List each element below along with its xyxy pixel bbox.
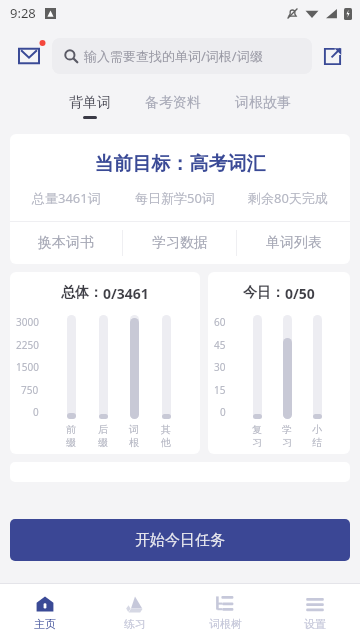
staticText: 学 <box>282 423 292 436</box>
staticText: 剩余80天完成 <box>248 189 328 207</box>
staticText: 今日： <box>243 284 285 302</box>
button[interactable]: Messages <box>12 39 46 73</box>
staticText: 小 <box>312 423 322 436</box>
staticText: 后 <box>98 423 108 436</box>
staticText: 15 <box>214 383 226 397</box>
staticText: 输入需要查找的单词/词根/词缀 <box>84 47 263 65</box>
staticText: 他 <box>161 436 171 449</box>
staticText: 主页 <box>34 617 56 631</box>
staticText: 1500 <box>16 360 39 374</box>
button[interactable]: 换本词书 <box>10 222 122 264</box>
staticText: 0 <box>33 405 39 419</box>
staticText: 结 <box>312 436 322 449</box>
staticText: 习 <box>252 436 262 449</box>
button[interactable]: 主页 <box>0 594 90 631</box>
button[interactable]: 练习 <box>90 594 180 631</box>
staticText: 词根故事 <box>235 94 291 112</box>
staticText: 前 <box>66 423 76 436</box>
staticText: 词根树 <box>209 617 242 631</box>
staticText: 缀 <box>66 436 76 449</box>
staticText: 9:28 <box>10 4 36 22</box>
button[interactable]: 设置 <box>270 594 360 631</box>
staticText: 背单词 <box>69 94 111 112</box>
button[interactable]: 备考资料 <box>143 94 203 116</box>
button[interactable]: 词根故事 <box>233 94 293 116</box>
staticText: 2250 <box>16 338 39 352</box>
staticText: 总量3461词 <box>32 189 101 207</box>
staticText: 缀 <box>98 436 108 449</box>
button[interactable]: 背单词 <box>67 94 113 119</box>
staticText: 单词列表 <box>266 234 322 252</box>
button[interactable]: 词根树 <box>180 594 270 631</box>
staticText: 设置 <box>304 617 326 631</box>
staticText: 750 <box>21 383 39 397</box>
staticText: 词 <box>129 423 139 436</box>
staticText: 当前目标：高考词汇 <box>10 152 350 176</box>
button[interactable]: 学习数据 <box>123 222 236 264</box>
staticText: 习 <box>282 436 292 449</box>
staticText: 总体： <box>61 284 103 302</box>
staticText: 3000 <box>16 315 39 329</box>
staticText: 其 <box>161 423 171 436</box>
staticText: 练习 <box>124 617 146 631</box>
staticText: 开始今日任务 <box>135 531 225 550</box>
staticText: 0/50 <box>285 284 315 303</box>
staticText: 0/3461 <box>103 284 149 303</box>
button[interactable]: 开始今日任务 <box>10 519 350 561</box>
button[interactable]: Open external <box>316 40 348 72</box>
staticText: 复 <box>252 423 262 436</box>
staticText: 60 <box>214 315 226 329</box>
staticText: 换本词书 <box>38 234 94 252</box>
staticText: 根 <box>129 436 139 449</box>
staticText: 0 <box>220 405 226 419</box>
button[interactable]: 输入需要查找的单词/词根/词缀 <box>52 38 312 74</box>
button[interactable]: 单词列表 <box>237 222 350 264</box>
staticText: 每日新学50词 <box>135 189 215 207</box>
staticText: 45 <box>214 338 226 352</box>
staticText: 备考资料 <box>145 94 201 112</box>
staticText: 30 <box>214 360 226 374</box>
staticText: 学习数据 <box>152 234 208 252</box>
